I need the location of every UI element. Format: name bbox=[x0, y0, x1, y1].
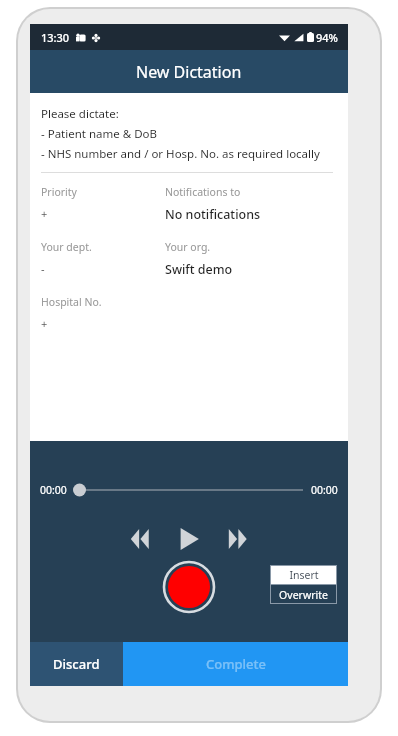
button[interactable]: Record bbox=[163, 561, 215, 613]
button[interactable]: Discard bbox=[30, 642, 123, 686]
staticText: Your dept. bbox=[41, 240, 92, 254]
button[interactable]: Fast forward bbox=[221, 522, 255, 556]
staticText: - NHS number and / or Hosp. No. as requi… bbox=[41, 146, 320, 162]
button[interactable]: Complete bbox=[123, 642, 348, 686]
button[interactable]: Rewind bbox=[123, 522, 157, 556]
staticText: + bbox=[41, 316, 48, 331]
staticText: 13:30 bbox=[41, 30, 70, 45]
staticText: Hospital No. bbox=[41, 295, 102, 309]
staticText: Your org. bbox=[165, 240, 211, 254]
button[interactable] bbox=[73, 483, 305, 497]
staticText: Swift demo bbox=[165, 261, 233, 278]
button[interactable]: Priority bbox=[41, 185, 165, 221]
staticText: Please dictate: bbox=[41, 106, 119, 122]
button[interactable]: Insert bbox=[270, 565, 337, 584]
staticText: Overwrite bbox=[279, 588, 328, 602]
button[interactable]: Your dept. bbox=[41, 240, 165, 276]
staticText: 94% bbox=[316, 30, 338, 45]
staticText: Priority bbox=[41, 185, 77, 199]
staticText: - bbox=[41, 261, 45, 276]
staticText: 00:00 bbox=[40, 483, 67, 497]
button[interactable]: Notifications to bbox=[165, 185, 337, 223]
staticText: Discard bbox=[53, 655, 100, 673]
staticText: New Dictation bbox=[136, 61, 242, 83]
button[interactable]: Your org. bbox=[165, 240, 337, 278]
staticText: 00:00 bbox=[311, 483, 338, 497]
button[interactable]: Play bbox=[169, 519, 209, 559]
staticText: No notifications bbox=[165, 206, 261, 223]
button[interactable]: Overwrite bbox=[270, 585, 337, 604]
staticText: Insert bbox=[289, 568, 319, 582]
staticText: + bbox=[41, 206, 48, 221]
staticText: Notifications to bbox=[165, 185, 241, 199]
staticText: - Patient name & DoB bbox=[41, 126, 157, 142]
button[interactable]: Hospital No. bbox=[41, 295, 165, 331]
staticText: Complete bbox=[206, 655, 266, 673]
